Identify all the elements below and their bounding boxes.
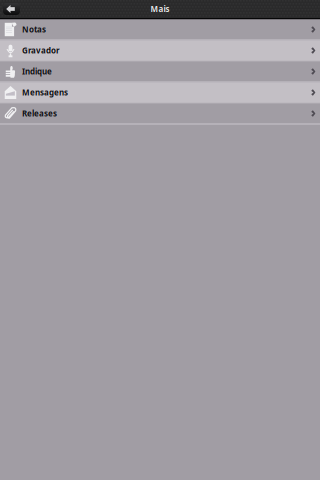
button[interactable]: Notas xyxy=(0,19,320,40)
staticText: Indique xyxy=(22,66,52,77)
staticText: Mais xyxy=(150,4,169,14)
button[interactable]: Mensagens xyxy=(0,82,320,103)
staticText: Mensagens xyxy=(22,87,68,98)
staticText: Releases xyxy=(22,108,57,119)
button[interactable]: Back xyxy=(3,3,20,15)
button[interactable]: Indique xyxy=(0,61,320,82)
button[interactable]: Releases xyxy=(0,103,320,124)
staticText: Gravador xyxy=(22,45,60,56)
button[interactable]: Gravador xyxy=(0,40,320,61)
staticText: Notas xyxy=(22,24,46,35)
